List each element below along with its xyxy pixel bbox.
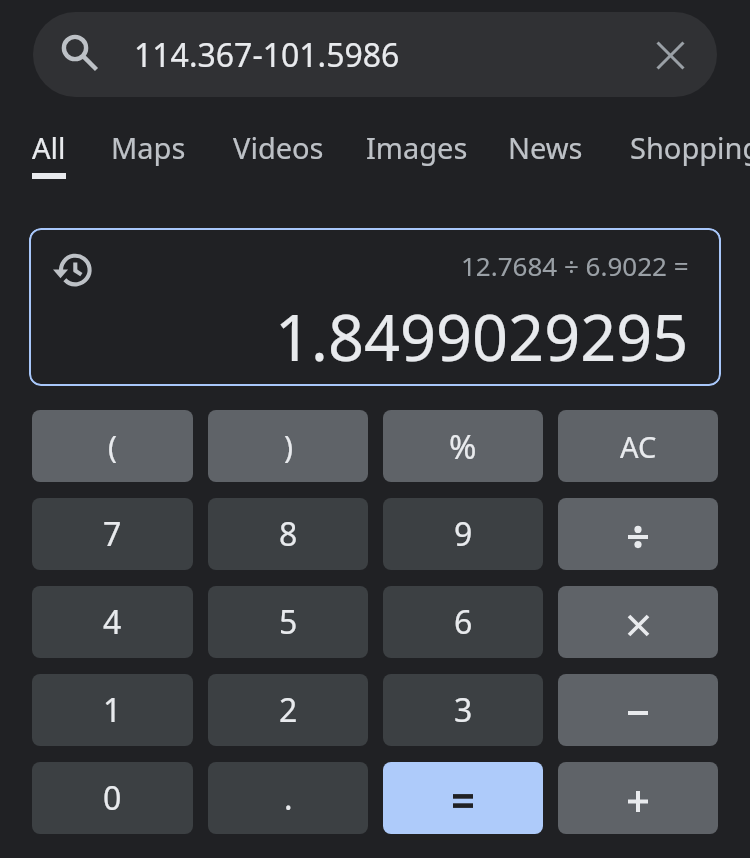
button[interactable]: Multiply	[558, 586, 718, 658]
staticText: 0	[103, 776, 122, 820]
button[interactable]: History	[54, 250, 94, 290]
button[interactable]: Subtract	[558, 674, 718, 746]
staticText: 114.367-101.5986	[134, 33, 637, 77]
staticText: Shopping	[630, 128, 750, 167]
button[interactable]: 2	[208, 674, 368, 746]
button[interactable]: )	[208, 410, 368, 482]
button[interactable]: Clear search	[637, 22, 703, 88]
button[interactable]: Shopping	[630, 128, 750, 173]
button[interactable]: Videos	[233, 128, 324, 173]
button[interactable]: Maps	[111, 128, 186, 173]
button[interactable]: News	[508, 128, 583, 173]
button[interactable]: 3	[383, 674, 543, 746]
button[interactable]: Add	[558, 762, 718, 834]
button[interactable]: 8	[208, 498, 368, 570]
button[interactable]: 4	[32, 586, 193, 658]
button[interactable]: 9	[383, 498, 543, 570]
staticText: )	[284, 426, 293, 467]
staticText: .	[284, 776, 293, 820]
staticText: 8	[279, 512, 298, 556]
button[interactable]: All	[32, 128, 66, 179]
button[interactable]: %	[383, 410, 543, 482]
staticText: Maps	[111, 128, 186, 167]
staticText: Videos	[233, 128, 324, 167]
button[interactable]: .	[208, 762, 368, 834]
button[interactable]: Images	[366, 128, 468, 173]
staticText: 4	[103, 600, 122, 644]
button[interactable]: Equals	[383, 762, 543, 834]
button[interactable]: 7	[32, 498, 193, 570]
button[interactable]: 0	[32, 762, 193, 834]
staticText: News	[508, 128, 583, 167]
staticText: 2	[279, 688, 298, 732]
button[interactable]: 6	[383, 586, 543, 658]
button[interactable]: Divide	[558, 498, 718, 570]
staticText: 1.8499029295	[275, 294, 689, 380]
staticText: %	[449, 424, 477, 469]
staticText: All	[32, 128, 66, 167]
staticText: 3	[454, 688, 473, 732]
button[interactable]: 1	[32, 674, 193, 746]
staticText: AC	[620, 427, 657, 466]
staticText: 9	[454, 512, 473, 556]
button[interactable]: (	[32, 410, 193, 482]
staticText: 5	[279, 600, 298, 644]
staticText: 7	[103, 512, 122, 556]
button[interactable]: AC	[558, 410, 718, 482]
button[interactable]: 5	[208, 586, 368, 658]
staticText: 6	[454, 600, 473, 644]
staticText: Images	[366, 128, 468, 167]
button[interactable]: 114.367-101.5986	[33, 12, 717, 97]
staticText: 12.7684 ÷ 6.9022 =	[461, 248, 689, 283]
staticText: (	[108, 426, 117, 467]
staticText: 1	[103, 688, 122, 732]
